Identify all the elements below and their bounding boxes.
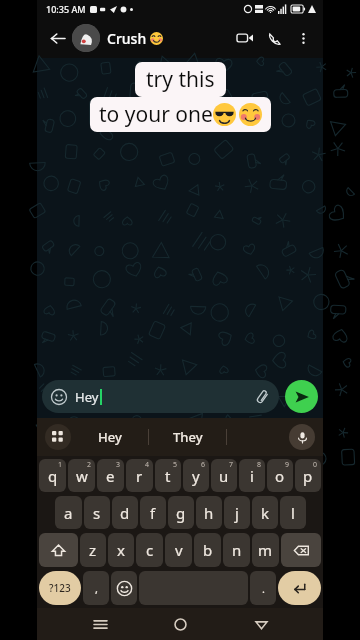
- staticText: try this: [146, 65, 215, 94]
- staticText: to your one: [99, 100, 213, 129]
- button[interactable]: Back: [44, 25, 70, 51]
- staticText: They: [173, 428, 203, 446]
- staticText: m: [258, 540, 273, 560]
- staticText: 9: [285, 460, 290, 470]
- button[interactable]: v: [165, 533, 192, 567]
- staticText: ?123: [49, 581, 71, 595]
- staticText: y: [192, 466, 200, 486]
- button[interactable]: q: [39, 459, 66, 492]
- staticText: x: [117, 540, 125, 560]
- button[interactable]: Home: [162, 608, 198, 640]
- button[interactable]: n: [223, 533, 250, 567]
- button[interactable]: ?123: [39, 571, 81, 605]
- button[interactable]: e: [97, 459, 124, 492]
- staticText: j: [235, 503, 239, 523]
- button[interactable]: w: [68, 459, 95, 492]
- button[interactable]: They: [149, 418, 226, 456]
- button[interactable]: Back: [243, 608, 279, 640]
- button[interactable]: [72, 24, 100, 52]
- button[interactable]: Emoji: [111, 571, 137, 605]
- staticText: n: [232, 540, 242, 560]
- staticText: v: [175, 540, 183, 560]
- staticText: 3: [116, 460, 121, 470]
- button[interactable]: g: [168, 496, 194, 529]
- button[interactable]: More options: [290, 25, 316, 51]
- staticText: Hey: [75, 388, 99, 406]
- button[interactable]: Recent apps: [82, 608, 118, 640]
- button[interactable]: Hey: [42, 380, 279, 413]
- button[interactable]: Clipboard: [45, 424, 71, 450]
- button[interactable]: ,: [83, 571, 109, 605]
- button[interactable]: .: [250, 571, 276, 605]
- staticText: w: [76, 466, 88, 486]
- staticText: r: [136, 466, 143, 486]
- staticText: c: [146, 540, 154, 560]
- staticText: z: [89, 540, 97, 560]
- button[interactable]: s: [84, 496, 110, 529]
- staticText: 2: [87, 460, 92, 470]
- staticText: t: [165, 466, 171, 486]
- staticText: a: [64, 503, 73, 523]
- button[interactable]: Messages are end-to-end encrypted. Tap t…: [89, 98, 271, 128]
- button[interactable]: Crush: [107, 29, 230, 48]
- staticText: d: [120, 503, 130, 523]
- staticText: l: [291, 503, 295, 523]
- button[interactable]: j: [224, 496, 250, 529]
- staticText: i: [250, 466, 254, 486]
- staticText: Hey: [98, 428, 122, 446]
- other: Attach: [255, 389, 270, 404]
- button[interactable]: t: [155, 459, 181, 492]
- button[interactable]: x: [108, 533, 134, 567]
- staticText: 0: [313, 460, 318, 470]
- staticText: g: [176, 503, 186, 523]
- button[interactable]: Video call: [230, 23, 260, 53]
- staticText: ,: [95, 581, 98, 596]
- button[interactable]: Hey: [71, 418, 148, 456]
- button[interactable]: r: [126, 459, 153, 492]
- button[interactable]: d: [112, 496, 138, 529]
- button[interactable]: o: [267, 459, 293, 492]
- button[interactable]: b: [194, 533, 221, 567]
- button[interactable]: y: [183, 459, 209, 492]
- staticText: o: [275, 466, 285, 486]
- staticText: Crush: [107, 29, 147, 48]
- staticText: f: [150, 503, 156, 523]
- staticText: s: [93, 503, 101, 523]
- button[interactable]: Shift: [39, 533, 78, 567]
- button[interactable]: c: [136, 533, 163, 567]
- button[interactable]: Voice input: [289, 424, 315, 450]
- button[interactable]: Send: [285, 380, 318, 413]
- button[interactable]: p: [295, 459, 321, 492]
- staticText: Messages are end-to-end encrypted. Tap t…: [111, 102, 249, 124]
- staticText: p: [303, 466, 313, 486]
- button[interactable]: u: [211, 459, 237, 492]
- staticText: k: [261, 503, 270, 523]
- button[interactable]: Enter: [278, 571, 321, 605]
- button[interactable]: i: [239, 459, 265, 492]
- button[interactable]: a: [55, 496, 82, 529]
- staticText: 5: [173, 460, 178, 470]
- button[interactable]: m: [252, 533, 279, 567]
- button[interactable]: f: [140, 496, 166, 529]
- staticText: 10:35 AM: [46, 3, 86, 15]
- staticText: 6: [201, 460, 206, 470]
- button[interactable]: k: [252, 496, 278, 529]
- button[interactable]: Voice call: [260, 23, 290, 53]
- staticText: b: [203, 540, 213, 560]
- staticText: 7: [229, 460, 234, 470]
- button[interactable]: l: [280, 496, 306, 529]
- staticText: u: [219, 466, 229, 486]
- staticText: q: [48, 466, 58, 486]
- staticText: h: [204, 503, 214, 523]
- staticText: .: [262, 581, 265, 596]
- staticText: 1: [58, 460, 63, 470]
- staticText: e: [106, 466, 115, 486]
- button[interactable]: z: [80, 533, 106, 567]
- staticText: 4: [145, 460, 150, 470]
- button[interactable]: h: [196, 496, 222, 529]
- button[interactable]: Backspace: [281, 533, 321, 567]
- staticText: 8: [257, 460, 262, 470]
